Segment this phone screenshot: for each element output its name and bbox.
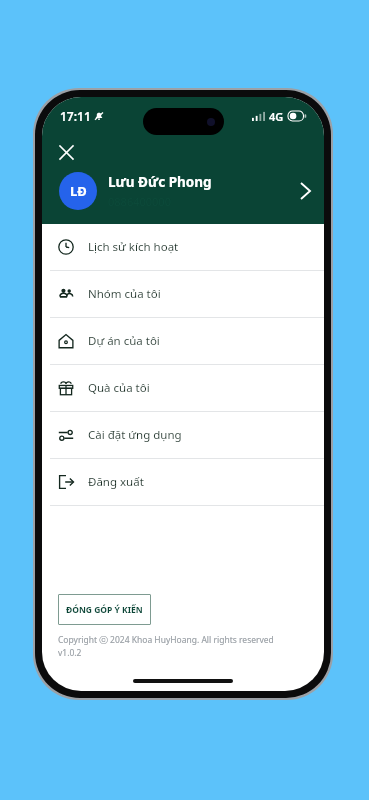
button[interactable]: Dự án của tôi <box>42 318 324 365</box>
button[interactable]: Close <box>53 139 79 165</box>
staticText: Lưu Đức Phong <box>108 173 212 191</box>
staticText: Cài đặt ứng dụng <box>88 427 182 443</box>
staticText: Copyright ⓒ 2024 Khoa HuyHoang. All righ… <box>58 634 274 659</box>
button[interactable]: Nhóm của tôi <box>42 271 324 318</box>
staticText: Lịch sử kích hoạt <box>88 239 179 255</box>
button[interactable]: Đăng xuất <box>42 459 324 506</box>
button[interactable]: LĐ <box>42 165 324 217</box>
button[interactable]: Quà của tôi <box>42 365 324 412</box>
staticText: 17:11 <box>60 108 91 124</box>
button[interactable]: ĐÓNG GÓP Ý KIẾN <box>58 594 151 625</box>
staticText: Đăng xuất <box>88 474 144 490</box>
staticText: LĐ <box>70 182 87 200</box>
other: Profile details <box>301 183 310 199</box>
staticText: Quà của tôi <box>88 380 150 396</box>
staticText: 4G <box>269 109 284 124</box>
button[interactable]: Lịch sử kích hoạt <box>42 224 324 271</box>
staticText: ĐÓNG GÓP Ý KIẾN <box>66 604 143 616</box>
staticText: Dự án của tôi <box>88 333 160 349</box>
button[interactable]: Cài đặt ứng dụng <box>42 412 324 459</box>
staticText: Nhóm của tôi <box>88 286 161 302</box>
